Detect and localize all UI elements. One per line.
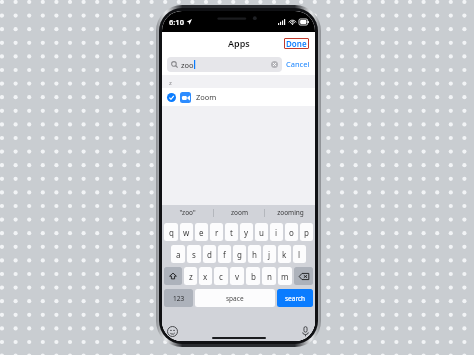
staticText: zooming	[277, 208, 304, 217]
staticText: p	[304, 227, 309, 238]
staticText: zoom	[231, 208, 248, 217]
staticText: v	[235, 271, 240, 282]
staticText: zoo	[181, 60, 194, 70]
button[interactable]: zoo	[171, 57, 278, 72]
button[interactable]: Done	[286, 38, 307, 49]
button[interactable]: w	[180, 223, 193, 241]
staticText: z	[169, 79, 172, 87]
staticText: "zoo"	[179, 208, 196, 217]
button[interactable]: z	[184, 267, 197, 285]
button[interactable]: t	[225, 223, 238, 241]
staticText: n	[267, 271, 272, 282]
button[interactable]: a	[171, 245, 185, 263]
button[interactable]: space	[195, 289, 275, 307]
staticText: r	[215, 227, 219, 238]
button[interactable]: search	[277, 289, 313, 307]
staticText: 6:10	[169, 17, 184, 27]
button[interactable]: zoom	[214, 205, 264, 220]
staticText: y	[244, 227, 249, 238]
staticText: e	[199, 227, 204, 238]
button[interactable]: y	[240, 223, 253, 241]
staticText: q	[169, 227, 174, 238]
button[interactable]: Emoji	[167, 326, 178, 337]
staticText: i	[275, 227, 278, 238]
button[interactable]: r	[210, 223, 223, 241]
button[interactable]: b	[246, 267, 260, 285]
button[interactable]: u	[255, 223, 268, 241]
button[interactable]: Zoom	[167, 88, 315, 106]
staticText: 123	[173, 294, 185, 303]
button[interactable]: m	[278, 267, 292, 285]
button[interactable]: c	[214, 267, 228, 285]
staticText: b	[251, 271, 256, 282]
button[interactable]: j	[263, 245, 276, 263]
staticText: Cancel	[286, 59, 310, 69]
button[interactable]: e	[195, 223, 208, 241]
staticText: Zoom	[196, 92, 217, 102]
button[interactable]: Dictation	[302, 326, 309, 337]
button[interactable]: x	[199, 267, 212, 285]
staticText: g	[237, 249, 242, 260]
staticText: x	[203, 271, 208, 282]
staticText: k	[282, 249, 287, 260]
button[interactable]: 123	[164, 289, 193, 307]
button[interactable]: h	[248, 245, 261, 263]
button[interactable]: d	[203, 245, 216, 263]
staticText: space	[226, 294, 244, 303]
staticText: l	[298, 249, 301, 260]
button[interactable]: Clear text	[271, 61, 278, 68]
button[interactable]: v	[230, 267, 244, 285]
staticText: d	[207, 249, 212, 260]
button[interactable]: o	[285, 223, 298, 241]
staticText: Done	[286, 38, 307, 49]
button[interactable]: zooming	[265, 205, 315, 220]
button[interactable]: Cancel	[286, 59, 310, 69]
staticText: a	[176, 249, 181, 260]
staticText: m	[281, 271, 289, 282]
staticText: search	[285, 294, 306, 303]
staticText: s	[192, 249, 196, 260]
staticText: f	[223, 249, 226, 260]
button[interactable]: s	[187, 245, 201, 263]
staticText: u	[259, 227, 264, 238]
staticText: z	[189, 271, 193, 282]
button[interactable]: "zoo"	[162, 205, 213, 220]
button[interactable]: n	[262, 267, 276, 285]
button[interactable]: f	[218, 245, 231, 263]
button[interactable]: q	[164, 223, 178, 241]
button[interactable]: i	[270, 223, 283, 241]
button[interactable]: Backspace	[294, 267, 313, 285]
button[interactable]: g	[233, 245, 246, 263]
staticText: t	[230, 227, 233, 238]
staticText: w	[183, 227, 190, 238]
staticText: h	[252, 249, 257, 260]
button[interactable]: l	[293, 245, 306, 263]
button[interactable]: p	[300, 223, 313, 241]
staticText: j	[268, 249, 271, 260]
button[interactable]: Shift	[164, 267, 182, 285]
button[interactable]: k	[278, 245, 291, 263]
staticText: Apps	[228, 37, 250, 49]
staticText: o	[289, 227, 294, 238]
staticText: c	[219, 271, 223, 282]
